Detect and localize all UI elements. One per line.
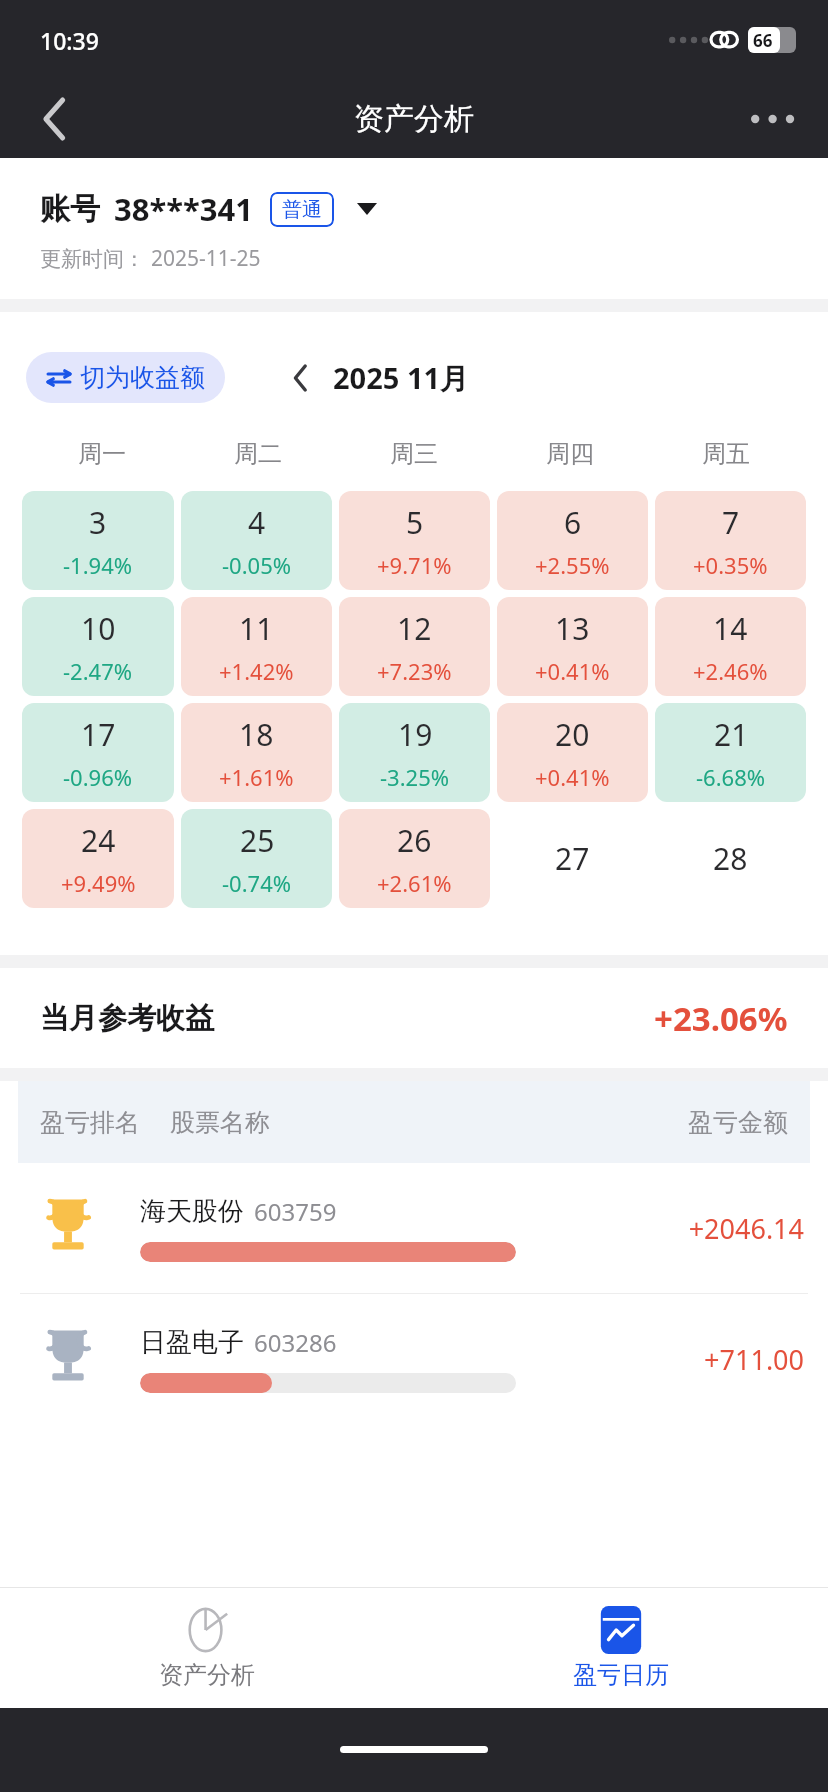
- staticText: 603759: [254, 1195, 337, 1228]
- button[interactable]: 25: [181, 809, 332, 908]
- button[interactable]: 切为收益额: [26, 352, 225, 403]
- staticText: 普通: [282, 197, 322, 222]
- button[interactable]: Rank 2: [0, 1294, 828, 1424]
- staticText: 12: [397, 608, 432, 649]
- staticText: 盈亏日历: [573, 1660, 669, 1690]
- staticText: +2.61%: [377, 868, 452, 898]
- staticText: 周四: [546, 439, 594, 469]
- staticText: 14: [713, 608, 748, 649]
- button[interactable]: 11: [181, 597, 332, 696]
- staticText: 日盈电子: [140, 1326, 244, 1359]
- staticText: +711.00: [624, 1341, 804, 1378]
- staticText: 13: [555, 608, 590, 649]
- button[interactable]: 17: [22, 703, 174, 802]
- staticText: 26: [397, 820, 432, 861]
- staticText: 4: [248, 502, 266, 543]
- staticText: +7.23%: [377, 656, 452, 686]
- button[interactable]: 27: [497, 809, 648, 908]
- staticText: 24: [81, 820, 116, 861]
- button[interactable]: 资产分析: [0, 1588, 414, 1708]
- button[interactable]: 21: [655, 703, 806, 802]
- staticText: 2025-11-25: [151, 244, 261, 273]
- staticText: 28: [713, 838, 748, 879]
- staticText: 海天股份: [140, 1195, 244, 1228]
- staticText: 7: [722, 502, 740, 543]
- staticText: 27: [555, 838, 590, 879]
- staticText: +2.55%: [535, 550, 610, 580]
- staticText: 账号: [40, 190, 100, 228]
- staticText: 19: [398, 714, 433, 755]
- staticText: 10: [81, 608, 116, 649]
- button[interactable]: Back: [22, 86, 88, 152]
- staticText: 20: [555, 714, 590, 755]
- staticText: +0.35%: [693, 550, 768, 580]
- button[interactable]: 普通: [270, 192, 334, 227]
- staticText: +1.61%: [219, 762, 294, 792]
- staticText: +9.49%: [61, 868, 136, 898]
- staticText: 周二: [234, 439, 282, 469]
- staticText: 当月参考收益: [40, 1000, 214, 1037]
- button[interactable]: 5: [339, 491, 490, 590]
- button[interactable]: 12: [339, 597, 490, 696]
- staticText: +0.41%: [535, 762, 610, 792]
- button[interactable]: Switch account: [350, 192, 384, 226]
- staticText: 17: [81, 714, 116, 755]
- staticText: 5: [406, 502, 424, 543]
- staticText: 25: [240, 820, 275, 861]
- button[interactable]: 14: [655, 597, 806, 696]
- staticText: 11: [239, 608, 274, 649]
- staticText: 2025 11月: [333, 358, 470, 398]
- staticText: -0.74%: [222, 868, 292, 898]
- staticText: 周三: [390, 439, 438, 469]
- staticText: +1.42%: [219, 656, 294, 686]
- button[interactable]: 10: [22, 597, 174, 696]
- staticText: 10:39: [40, 25, 99, 56]
- staticText: 603286: [254, 1326, 337, 1359]
- staticText: 18: [239, 714, 274, 755]
- other: Rank 2: [40, 1328, 96, 1390]
- staticText: -0.05%: [222, 550, 292, 580]
- staticText: 切为收益额: [80, 362, 205, 393]
- button[interactable]: 28: [655, 809, 806, 908]
- staticText: 股票名称: [170, 1107, 270, 1138]
- staticText: -3.25%: [380, 762, 450, 792]
- staticText: 6: [564, 502, 582, 543]
- staticText: 21: [714, 714, 749, 755]
- staticText: 3: [89, 502, 107, 543]
- button[interactable]: 盈亏日历: [414, 1588, 828, 1708]
- staticText: -1.94%: [63, 550, 133, 580]
- staticText: 盈亏金额: [688, 1107, 788, 1138]
- button[interactable]: 26: [339, 809, 490, 908]
- staticText: -6.68%: [696, 762, 766, 792]
- staticText: +2046.14: [624, 1210, 804, 1247]
- staticText: +23.06%: [654, 996, 788, 1041]
- staticText: 资产分析: [159, 1660, 255, 1690]
- staticText: 更新时间：: [40, 246, 145, 272]
- button[interactable]: 13: [497, 597, 648, 696]
- button[interactable]: 4: [181, 491, 332, 590]
- button[interactable]: 24: [22, 809, 174, 908]
- staticText: 66: [753, 29, 773, 52]
- staticText: +2.46%: [693, 656, 768, 686]
- button[interactable]: More options: [740, 86, 806, 152]
- staticText: 周五: [702, 439, 750, 469]
- staticText: 资产分析: [354, 100, 474, 138]
- button[interactable]: Rank 1: [0, 1163, 828, 1293]
- staticText: -0.96%: [63, 762, 133, 792]
- other: Rank 1: [40, 1197, 96, 1259]
- staticText: +0.41%: [535, 656, 610, 686]
- staticText: 周一: [78, 439, 126, 469]
- button[interactable]: 3: [22, 491, 174, 590]
- staticText: +9.71%: [377, 550, 452, 580]
- button[interactable]: Previous month: [281, 358, 321, 398]
- button[interactable]: 18: [181, 703, 332, 802]
- button[interactable]: 20: [497, 703, 648, 802]
- staticText: 盈亏排名: [40, 1107, 140, 1138]
- button[interactable]: 6: [497, 491, 648, 590]
- button[interactable]: 7: [655, 491, 806, 590]
- button[interactable]: 19: [339, 703, 490, 802]
- staticText: 38***341: [114, 188, 254, 230]
- staticText: -2.47%: [63, 656, 133, 686]
